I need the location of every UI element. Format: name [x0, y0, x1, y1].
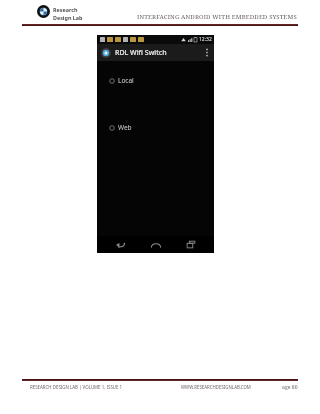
- staticText: RDL Wifi Switch: [115, 48, 167, 58]
- staticText: 12:32: [199, 36, 212, 43]
- staticText: Web: [118, 123, 132, 132]
- staticText: RESEARCH DESIGN LAB | VOLUME 1, ISSUE 1: [30, 384, 123, 390]
- button[interactable]: Recent apps: [179, 236, 203, 253]
- button[interactable]: Back: [108, 236, 132, 253]
- staticText: WWW.RESEARCHDESIGNLAB.COM: [181, 384, 251, 390]
- button[interactable]: More options: [200, 44, 214, 61]
- staticText: age 80: [282, 383, 298, 390]
- button[interactable]: Local: [97, 75, 214, 86]
- staticText: Design Lab: [53, 14, 83, 21]
- staticText: Research: [53, 6, 78, 13]
- button[interactable]: Web: [97, 122, 214, 133]
- staticText: INTERFACING ANDROID WITH EMBEDDED SYSTEM…: [137, 12, 297, 20]
- button[interactable]: Home: [144, 236, 168, 253]
- staticText: Local: [118, 76, 134, 85]
